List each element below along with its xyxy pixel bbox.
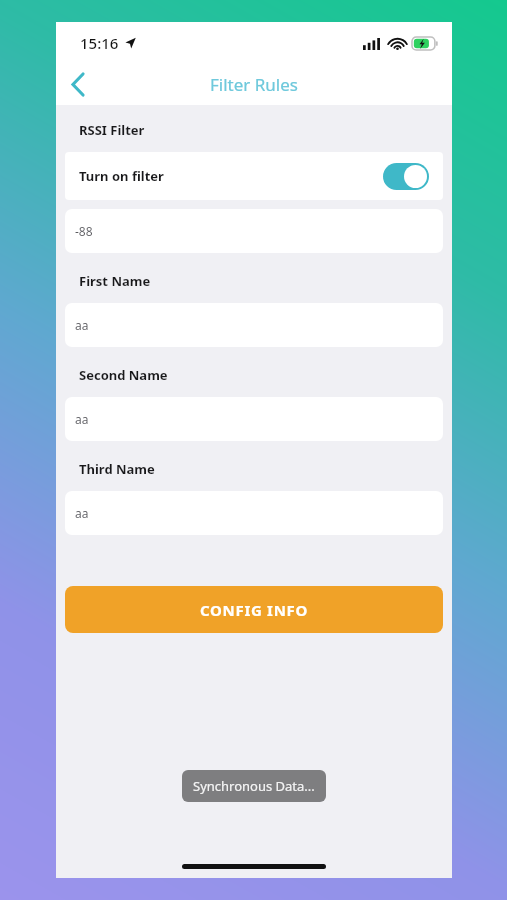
- staticText: RSSI Filter: [79, 121, 145, 139]
- staticText: CONFIG INFO: [200, 600, 309, 620]
- staticText: aa: [75, 317, 89, 333]
- staticText: First Name: [79, 272, 151, 290]
- staticText: 15:16: [80, 33, 119, 53]
- button[interactable]: Turn on filter: [65, 152, 443, 200]
- button[interactable]: -88: [65, 209, 443, 253]
- staticText: aa: [75, 411, 89, 427]
- button[interactable]: Turn on filter toggle: [383, 163, 429, 190]
- button[interactable]: Back: [56, 64, 100, 105]
- button[interactable]: CONFIG INFO: [65, 586, 443, 633]
- staticText: aa: [75, 505, 89, 521]
- staticText: Turn on filter: [79, 167, 164, 185]
- staticText: Synchronous Data...: [193, 777, 315, 795]
- button[interactable]: aa: [65, 491, 443, 535]
- button[interactable]: aa: [65, 303, 443, 347]
- staticText: Second Name: [79, 366, 168, 384]
- staticText: -88: [75, 223, 93, 239]
- staticText: Third Name: [79, 460, 155, 478]
- button[interactable]: aa: [65, 397, 443, 441]
- staticText: Filter Rules: [210, 73, 298, 96]
